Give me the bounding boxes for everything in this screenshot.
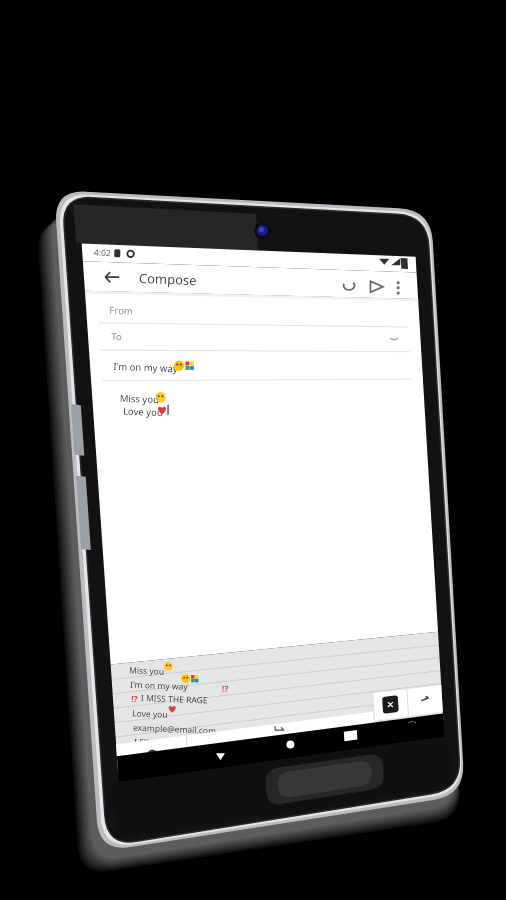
button[interactable]: Compose email screen on phone	[0, 0, 506, 900]
